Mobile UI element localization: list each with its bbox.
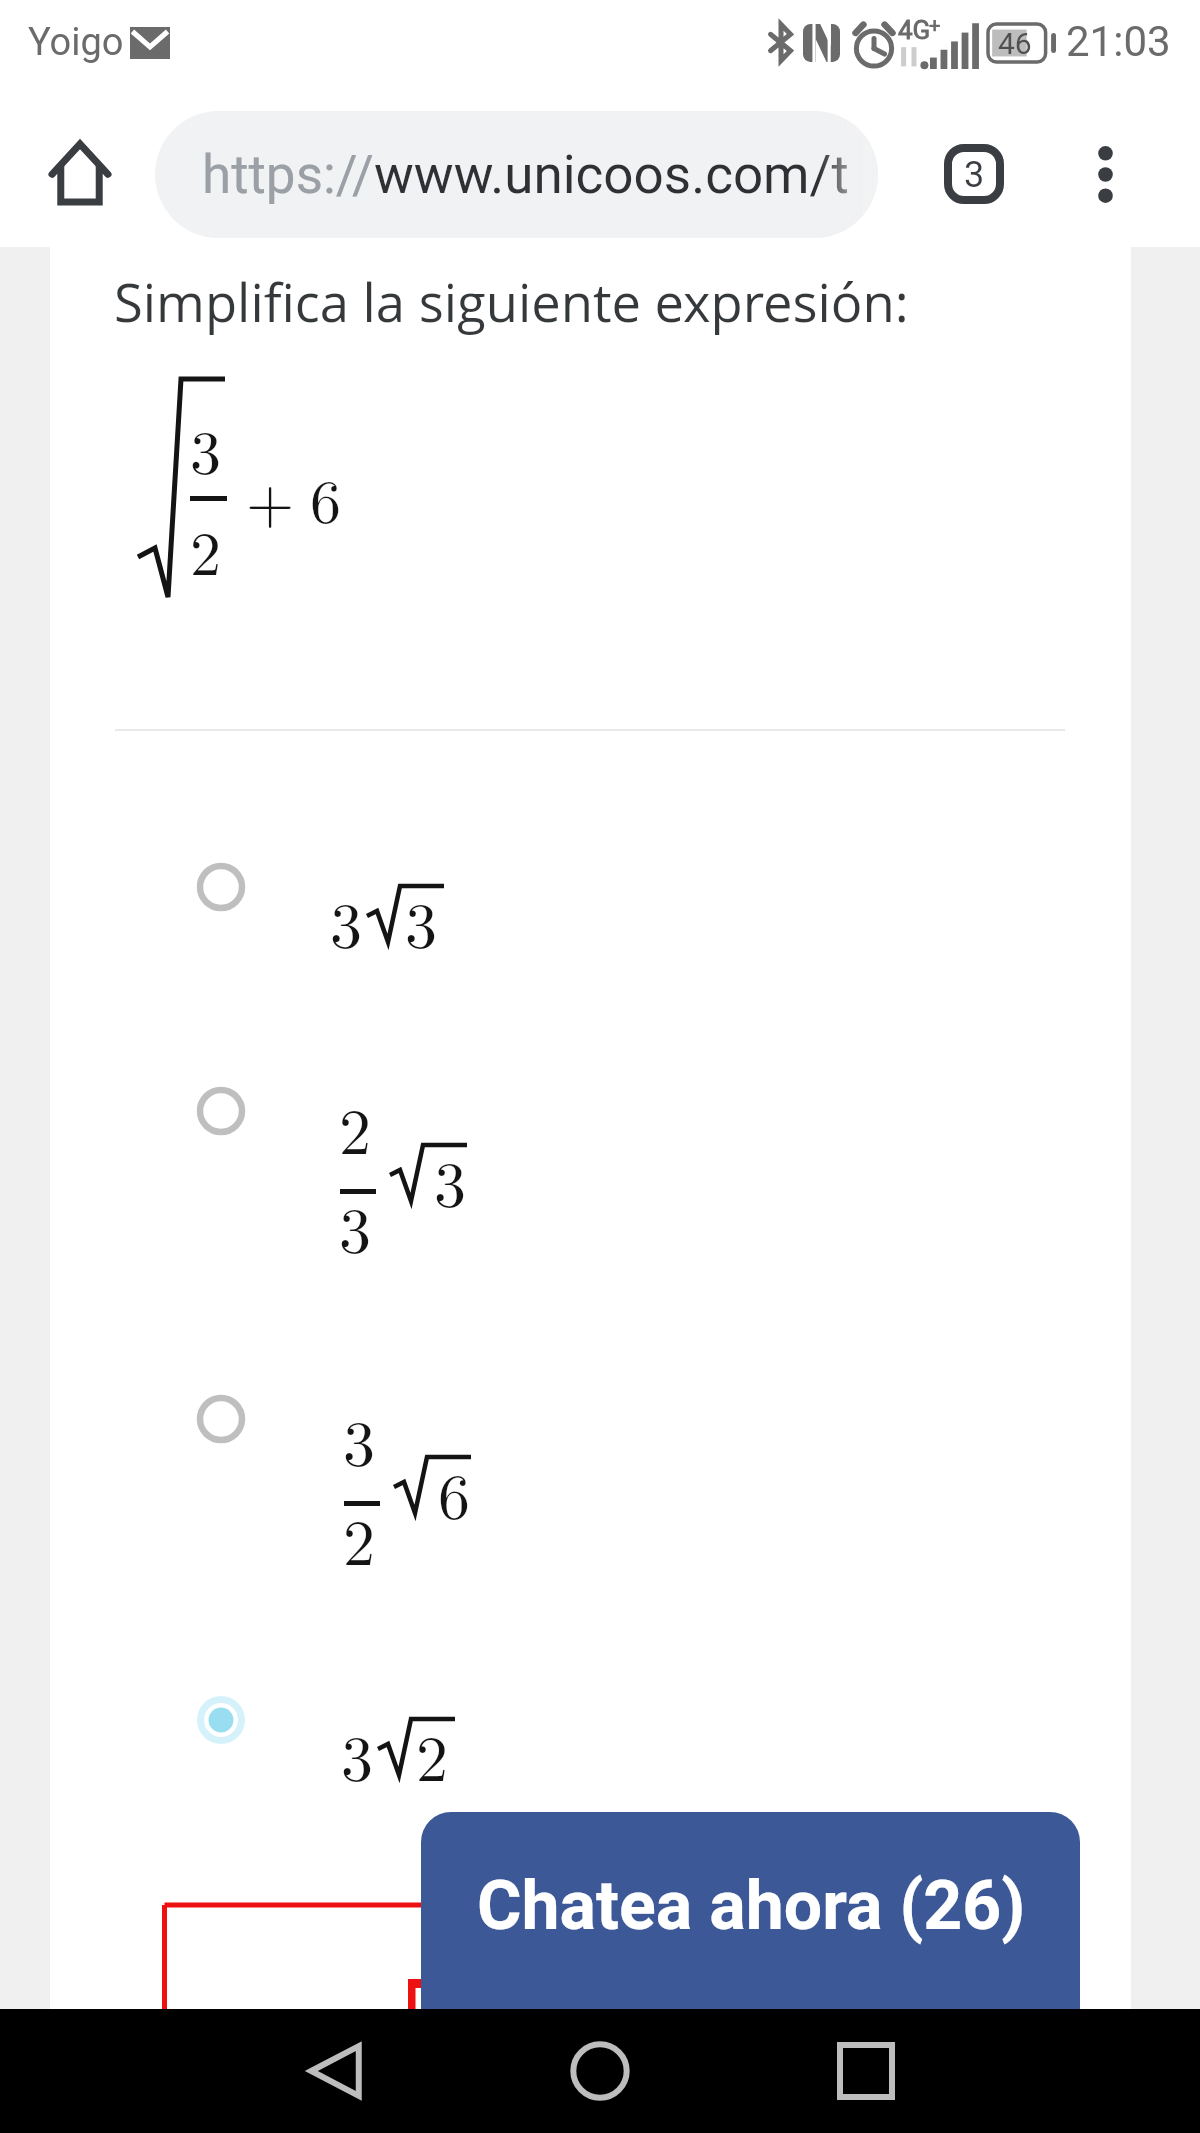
staticText: 4G: [898, 15, 931, 45]
staticText: 46: [998, 26, 1032, 61]
staticText: 3: [190, 404, 222, 492]
staticText: 3: [339, 1181, 371, 1272]
button[interactable]: Tabs: [919, 119, 1029, 229]
staticText: https://: [202, 144, 374, 206]
button[interactable]: [50, 795, 1131, 1025]
staticText: Chatea ahora (26): [477, 1866, 1026, 1946]
staticText: 3: [341, 1709, 373, 1800]
staticText: +: [246, 453, 295, 541]
button[interactable]: Home: [30, 123, 130, 223]
staticText: 21:03: [1066, 17, 1171, 66]
staticText: Yoigo: [28, 20, 124, 65]
staticText: www.unicoos.com/t: [374, 144, 849, 206]
staticText: 3: [330, 876, 362, 967]
staticText: +: [929, 13, 941, 36]
button[interactable]: More options: [1055, 116, 1155, 216]
button[interactable]: Chatea ahora (26): [421, 1812, 1080, 2009]
staticText: 2: [343, 1493, 375, 1584]
staticText: 6: [438, 1447, 470, 1538]
staticText: 2: [416, 1709, 448, 1800]
staticText: 3: [434, 1135, 466, 1226]
button[interactable]: [50, 1327, 1131, 1557]
button[interactable]: Home: [530, 2009, 670, 2133]
staticText: 3: [343, 1394, 375, 1485]
button[interactable]: Recents: [796, 2009, 936, 2133]
staticText: Simplifica la siguiente expresión:: [114, 266, 909, 337]
button[interactable]: https://: [155, 111, 878, 238]
staticText: 6: [310, 453, 342, 541]
button[interactable]: [50, 1628, 1131, 1858]
staticText: 2: [339, 1082, 371, 1173]
button[interactable]: Back: [265, 2009, 405, 2133]
staticText: 2: [190, 505, 222, 593]
staticText: 3: [405, 876, 437, 967]
button[interactable]: [50, 1019, 1131, 1249]
staticText: 3: [964, 154, 985, 196]
